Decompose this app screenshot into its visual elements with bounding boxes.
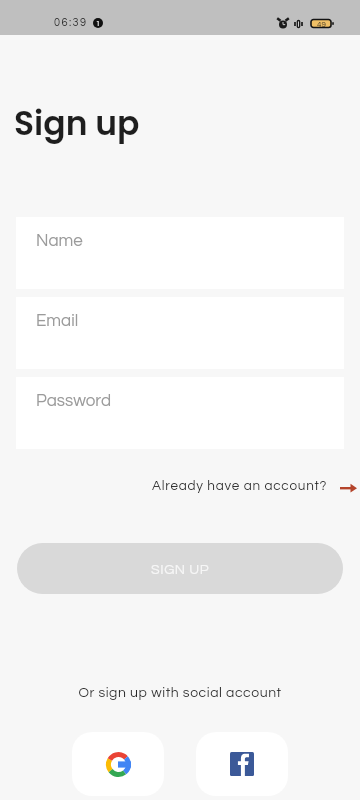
button[interactable]: Email xyxy=(16,297,344,369)
button[interactable]: Name xyxy=(16,217,344,289)
other: Go to sign in xyxy=(340,479,357,493)
staticText: 06:39 xyxy=(54,17,88,28)
button[interactable]: Sign up with Google xyxy=(72,732,164,796)
staticText: Already have an account? xyxy=(152,479,328,493)
staticText: Password xyxy=(36,392,112,410)
button[interactable]: SIGN UP xyxy=(17,543,343,594)
staticText: Sign up xyxy=(14,100,140,146)
staticText: 49 xyxy=(317,20,326,28)
staticText: SIGN UP xyxy=(151,563,210,577)
staticText: Or sign up with social account xyxy=(0,686,360,700)
button[interactable]: Sign up with Facebook xyxy=(196,732,288,796)
staticText: Email xyxy=(36,312,79,330)
staticText: Name xyxy=(36,232,83,250)
staticText: 1 xyxy=(96,20,100,27)
button[interactable]: Already have an account? xyxy=(152,476,357,496)
button[interactable]: Password xyxy=(16,377,344,449)
